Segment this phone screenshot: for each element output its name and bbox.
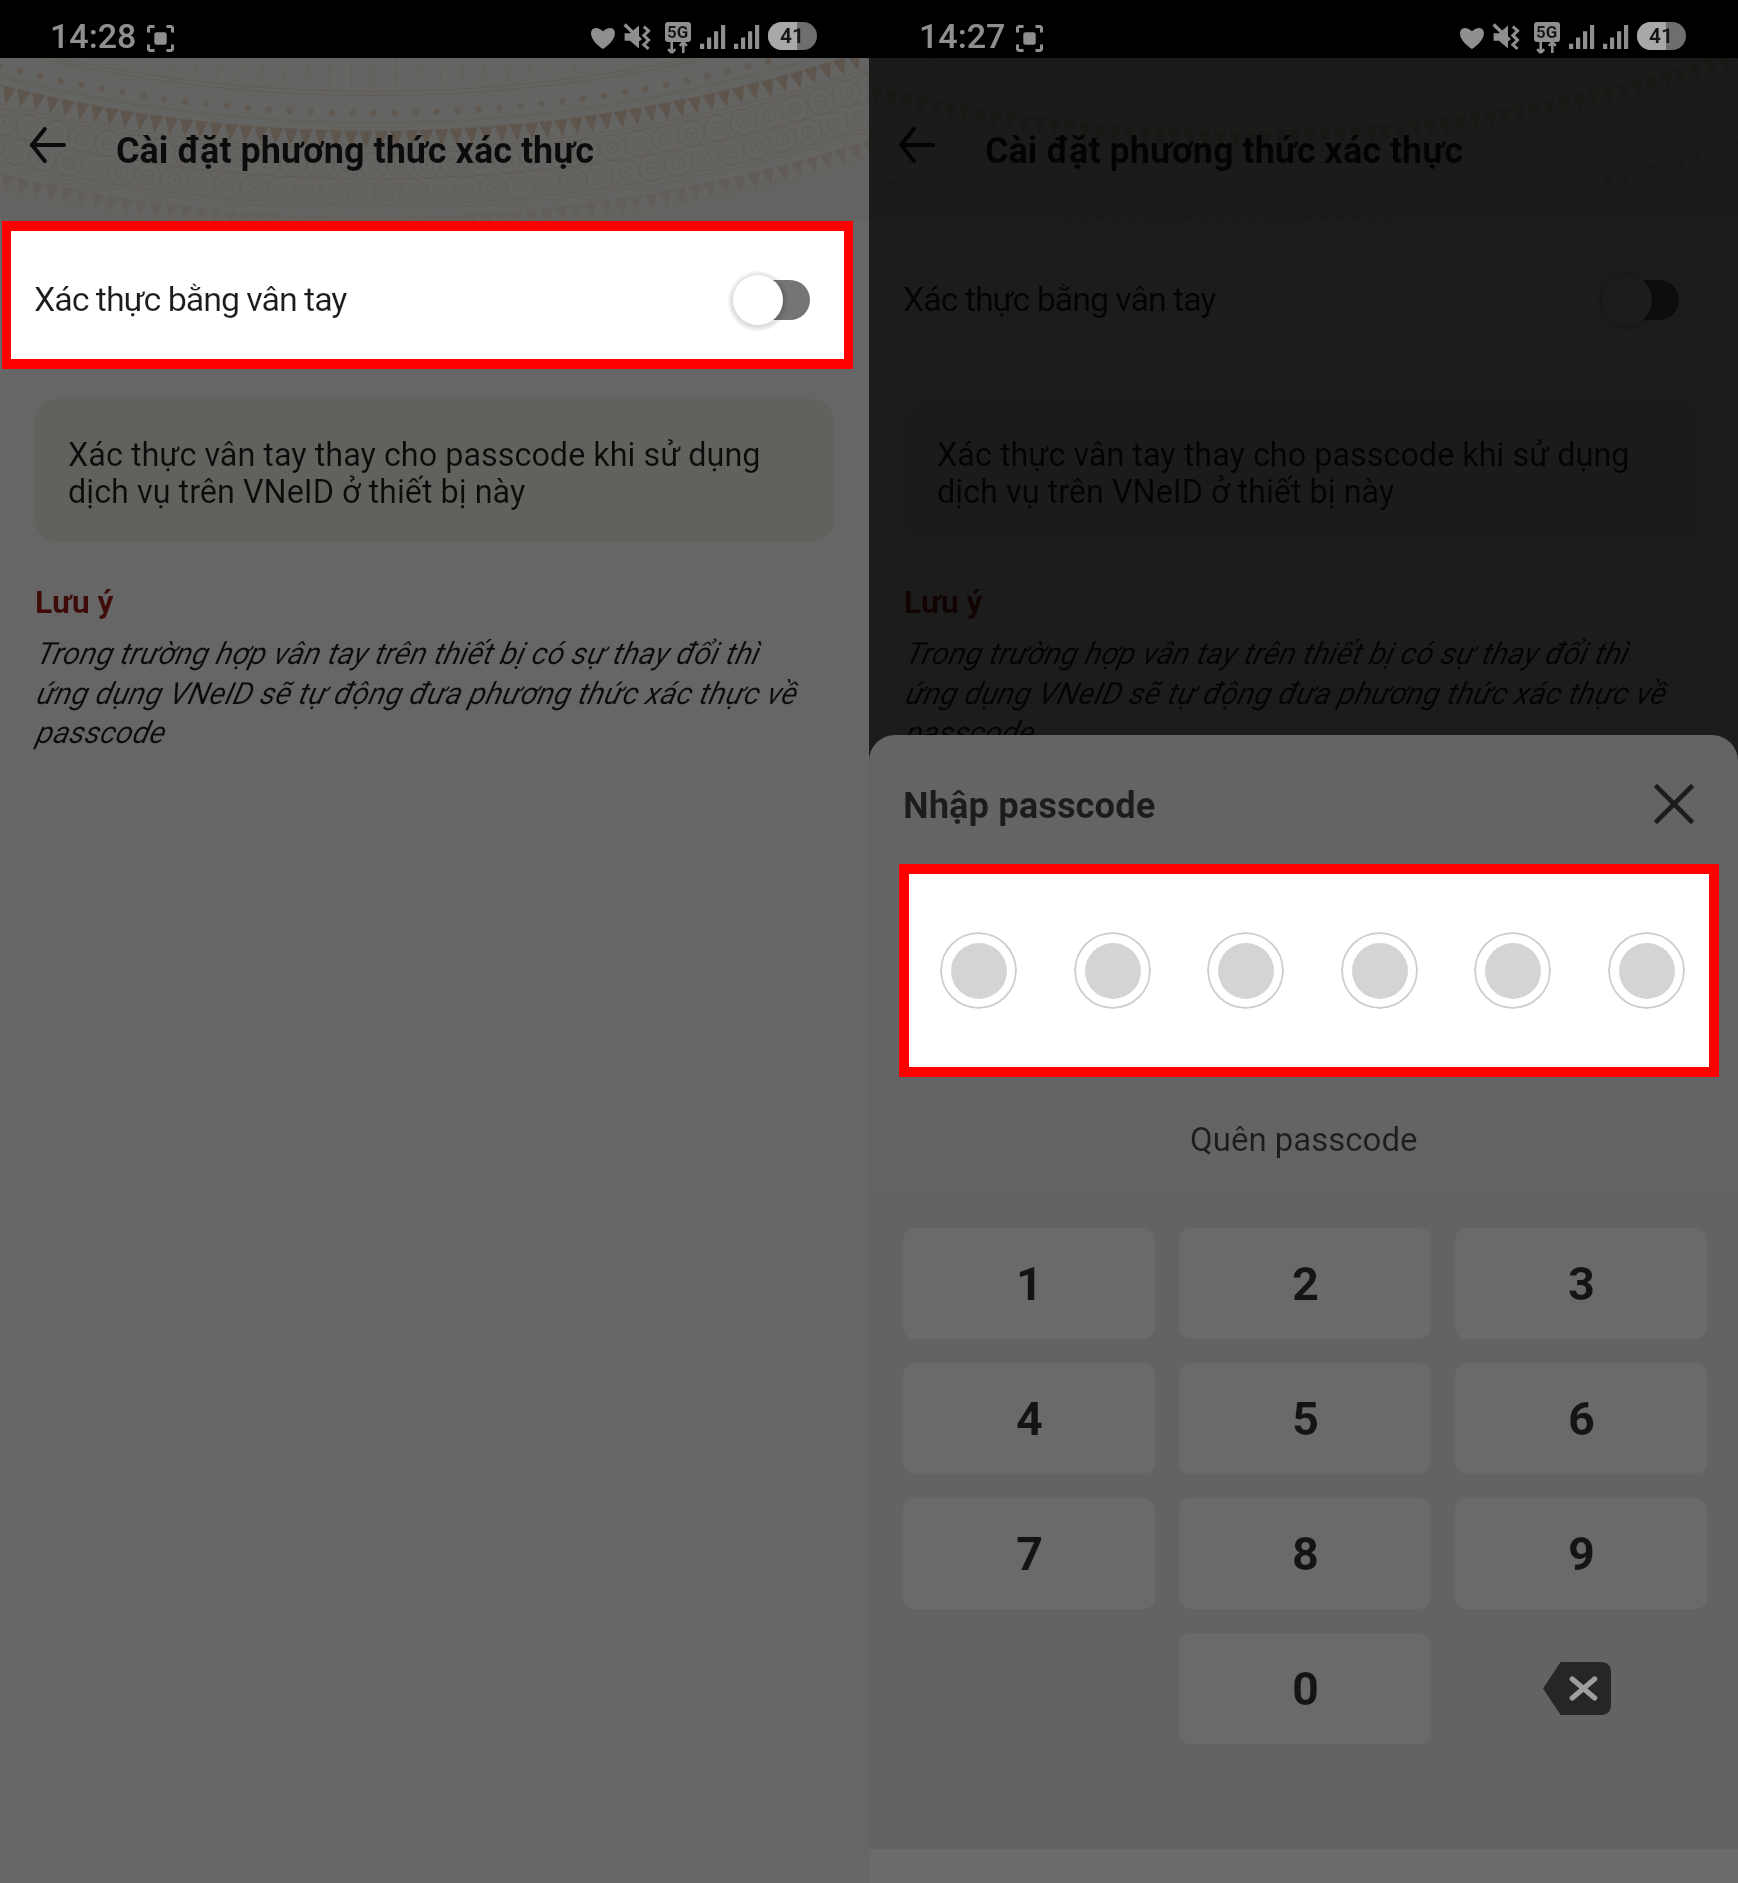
button[interactable]: Quên passcode: [1170, 1114, 1438, 1165]
button[interactable]: 1: [903, 1228, 1155, 1339]
staticText: Xác thực bằng vân tay: [34, 279, 347, 319]
staticText: Lưu ý: [904, 583, 983, 621]
staticText: Cài đặt phương thức xác thực: [116, 130, 595, 172]
staticText: 41: [1649, 24, 1674, 49]
button[interactable]: Close: [1651, 781, 1697, 827]
button[interactable]: 5: [1179, 1363, 1431, 1474]
button[interactable]: 2: [1179, 1228, 1431, 1339]
staticText: 6: [1568, 1391, 1595, 1446]
staticText: 7: [1016, 1526, 1043, 1581]
button[interactable]: 7: [903, 1498, 1155, 1609]
staticText: 14:28: [50, 16, 137, 56]
staticText: Trong trường hợp vân tay trên thiết bị c…: [904, 636, 1665, 750]
staticText: 41: [780, 24, 805, 49]
button[interactable]: 4: [903, 1363, 1155, 1474]
staticText: 1: [1016, 1256, 1043, 1311]
staticText: Lưu ý: [35, 583, 114, 621]
button[interactable]: Xác thực bằng vân tay: [869, 221, 1738, 369]
staticText: 5G: [667, 22, 689, 42]
staticText: 2: [1292, 1256, 1319, 1311]
staticText: Xác thực vân tay thay cho passcode khi s…: [937, 436, 1630, 511]
staticText: 9: [1568, 1526, 1595, 1581]
staticText: 8: [1292, 1526, 1319, 1581]
staticText: 5: [1292, 1391, 1319, 1446]
staticText: Nhập passcode: [903, 784, 1156, 827]
button[interactable]: 0: [1179, 1633, 1431, 1744]
button[interactable]: Back: [875, 103, 959, 187]
button[interactable]: 8: [1179, 1498, 1431, 1609]
button[interactable]: Backspace: [1455, 1633, 1707, 1744]
button[interactable]: Xác thực bằng vân tay: [0, 221, 869, 369]
staticText: Trong trường hợp vân tay trên thiết bị c…: [35, 636, 796, 750]
button[interactable]: 9: [1455, 1498, 1707, 1609]
button[interactable]: Back: [6, 103, 90, 187]
button[interactable]: 6: [1455, 1363, 1707, 1474]
staticText: 0: [1292, 1661, 1319, 1716]
staticText: 3: [1568, 1256, 1595, 1311]
staticText: 5G: [1536, 22, 1558, 42]
staticText: 4: [1016, 1391, 1043, 1446]
button[interactable]: 3: [1455, 1228, 1707, 1339]
staticText: Xác thực bằng vân tay: [34, 279, 347, 319]
staticText: Cài đặt phương thức xác thực: [985, 130, 1464, 172]
staticText: Xác thực bằng vân tay: [903, 279, 1216, 319]
staticText: Xác thực vân tay thay cho passcode khi s…: [68, 436, 761, 511]
button[interactable]: Xác thực bằng vân tay: [11, 231, 844, 359]
staticText: 14:27: [919, 16, 1006, 56]
